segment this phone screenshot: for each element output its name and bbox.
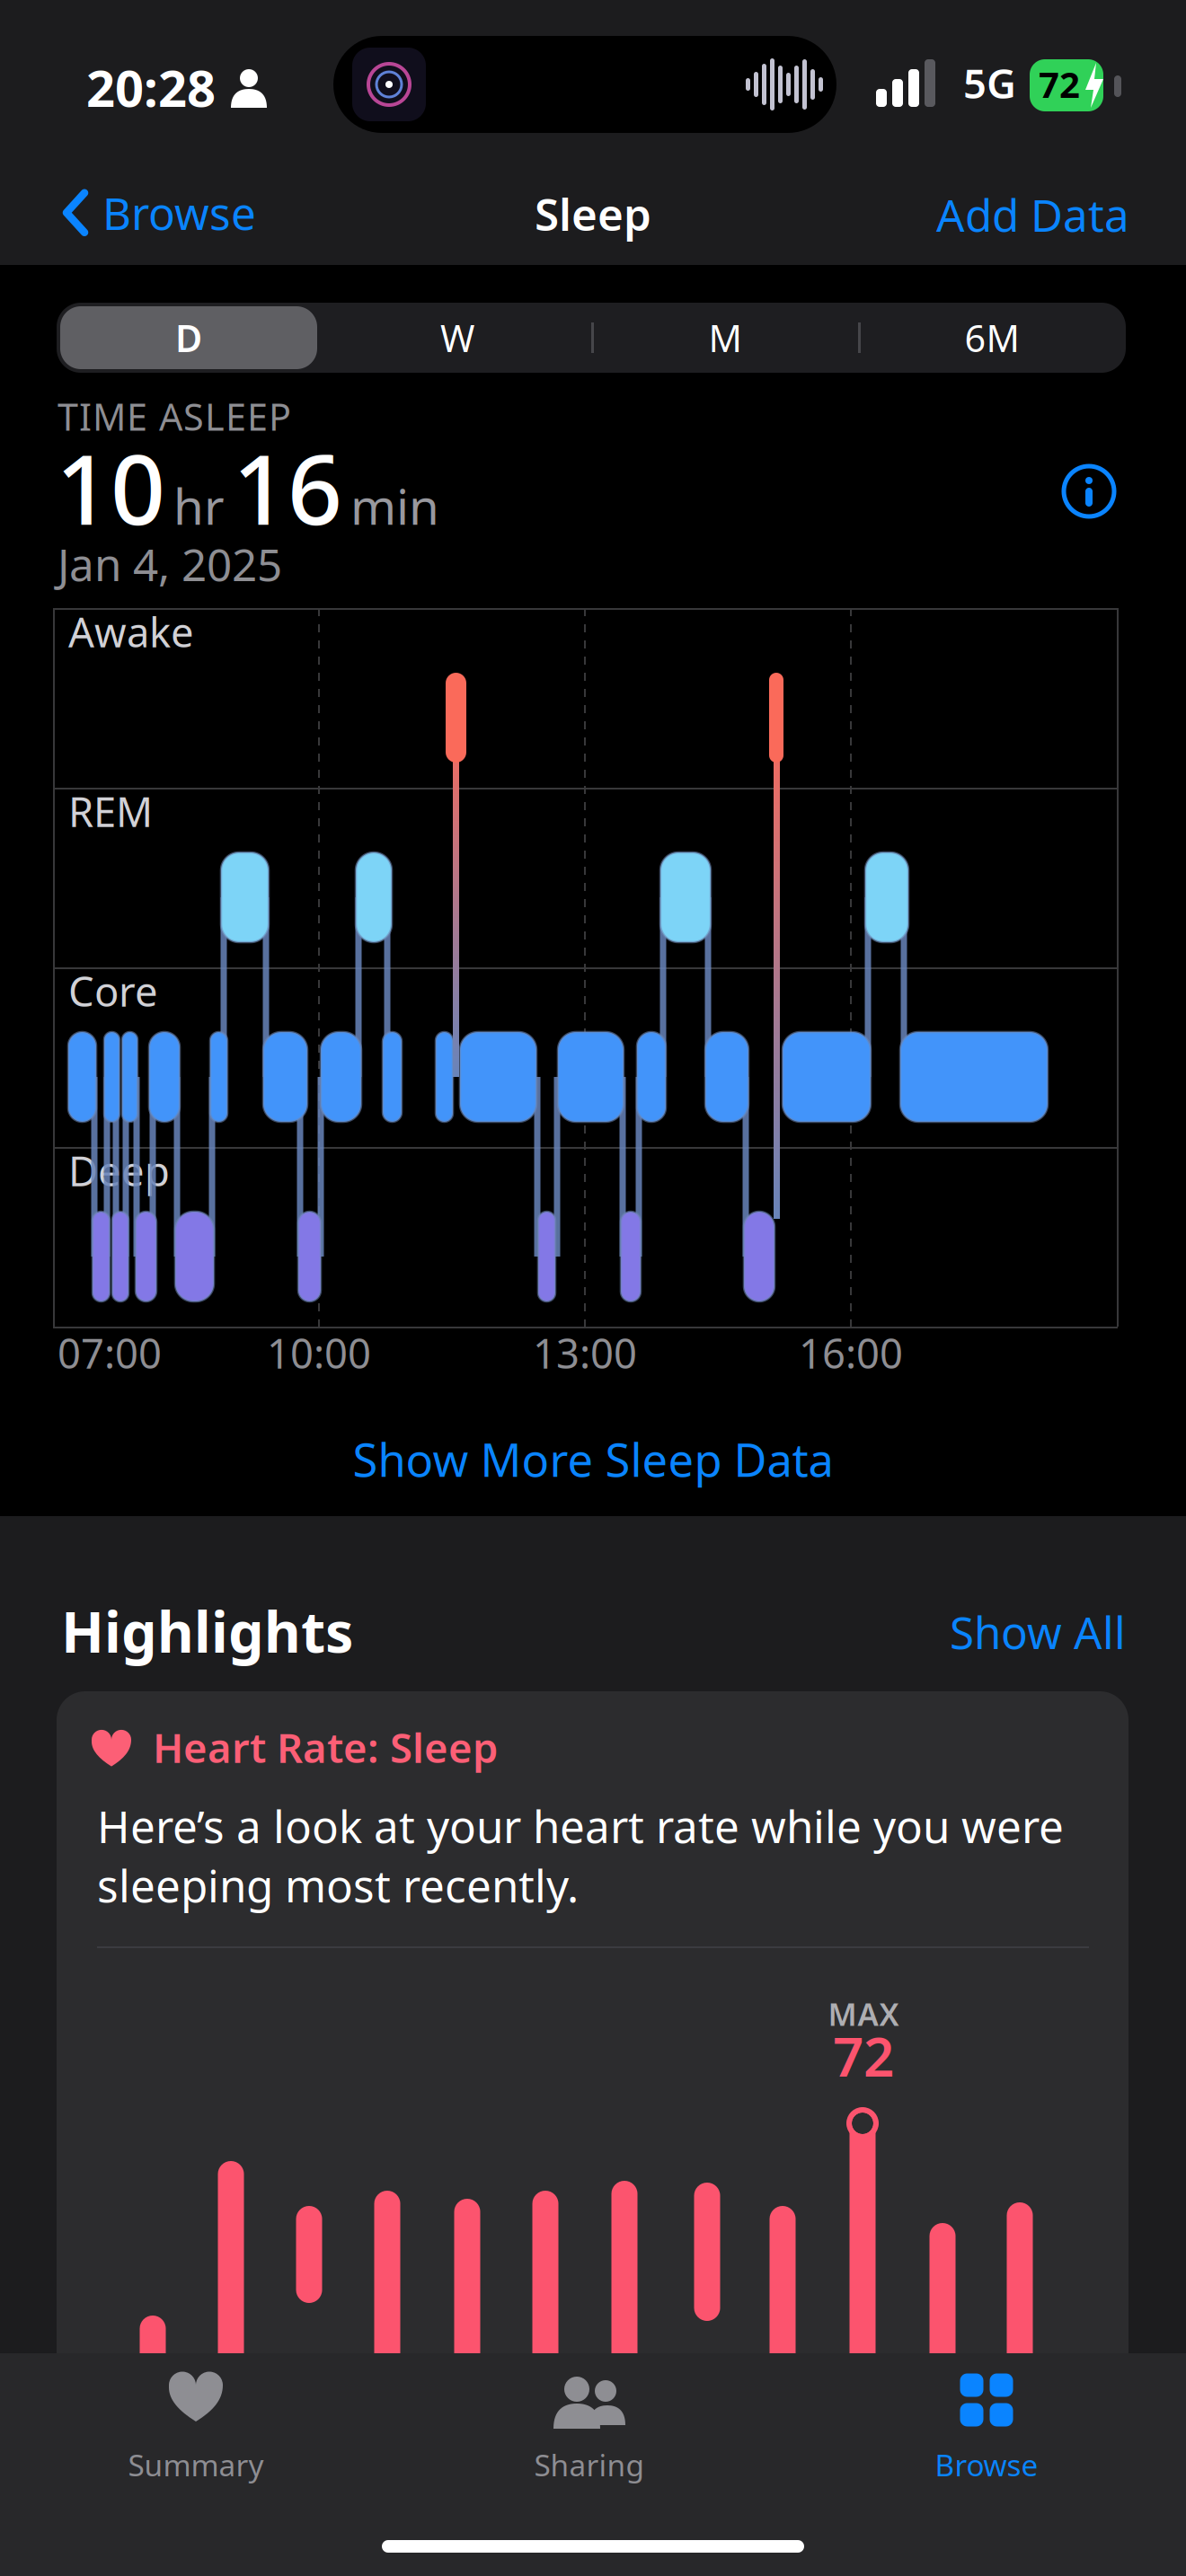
button[interactable]: 6M xyxy=(862,306,1122,369)
staticText: Core xyxy=(68,964,158,1018)
staticText: MAX xyxy=(828,1993,899,2034)
staticText: REM xyxy=(68,784,153,838)
staticText: Highlights xyxy=(61,1593,353,1668)
staticText: TIME ASLEEP xyxy=(58,392,291,441)
staticText: Jan 4, 2025 xyxy=(58,534,282,593)
staticText: Awake xyxy=(68,604,194,659)
button[interactable]: Show More Sleep Data xyxy=(0,1429,1186,1489)
button[interactable]: Show All xyxy=(856,1602,1126,1661)
staticText: D xyxy=(175,313,202,362)
button[interactable]: Sharing xyxy=(455,2371,724,2479)
staticText: hr xyxy=(173,473,225,538)
button[interactable]: M xyxy=(595,306,855,369)
staticText: 72 xyxy=(1039,60,1080,108)
staticText: Add Data xyxy=(936,185,1129,244)
staticText: Summary xyxy=(128,2445,264,2485)
staticText: Show More Sleep Data xyxy=(353,1429,833,1489)
button[interactable]: Summary xyxy=(61,2371,331,2479)
button[interactable]: Browse xyxy=(63,183,256,242)
staticText: Heart Rate: Sleep xyxy=(153,1720,498,1774)
staticText: Sharing xyxy=(534,2445,645,2485)
staticText: W xyxy=(440,313,474,362)
staticText: 16 xyxy=(233,424,342,551)
staticText: Browse xyxy=(935,2445,1038,2485)
button[interactable]: Browse xyxy=(852,2371,1121,2479)
button[interactable]: Heart Rate: Sleep xyxy=(57,1691,1128,2455)
staticText: 07:00 xyxy=(58,1326,162,1380)
staticText: 10:00 xyxy=(267,1326,371,1380)
button[interactable]: Add Data xyxy=(770,185,1129,244)
staticText: sleeping most recently. xyxy=(97,1856,579,1914)
staticText: Browse xyxy=(102,183,256,242)
staticText: M xyxy=(708,313,742,362)
staticText: Show All xyxy=(950,1602,1126,1661)
staticText: 6M xyxy=(965,313,1019,362)
staticText: 10 xyxy=(56,424,165,551)
staticText: 20:28 xyxy=(86,54,216,121)
button[interactable] xyxy=(1064,466,1114,516)
staticText: 13:00 xyxy=(533,1326,637,1380)
staticText: min xyxy=(350,473,439,538)
staticText: Sleep xyxy=(535,184,651,243)
staticText: Here’s a look at your heart rate while y… xyxy=(97,1796,1064,1855)
button[interactable] xyxy=(60,306,317,369)
staticText: 5G xyxy=(963,56,1016,110)
staticText: Deep xyxy=(68,1143,170,1197)
button[interactable]: W xyxy=(327,306,588,369)
staticText: 16:00 xyxy=(799,1326,903,1380)
button[interactable]: D xyxy=(60,306,317,369)
staticText: 72 xyxy=(833,2020,894,2092)
